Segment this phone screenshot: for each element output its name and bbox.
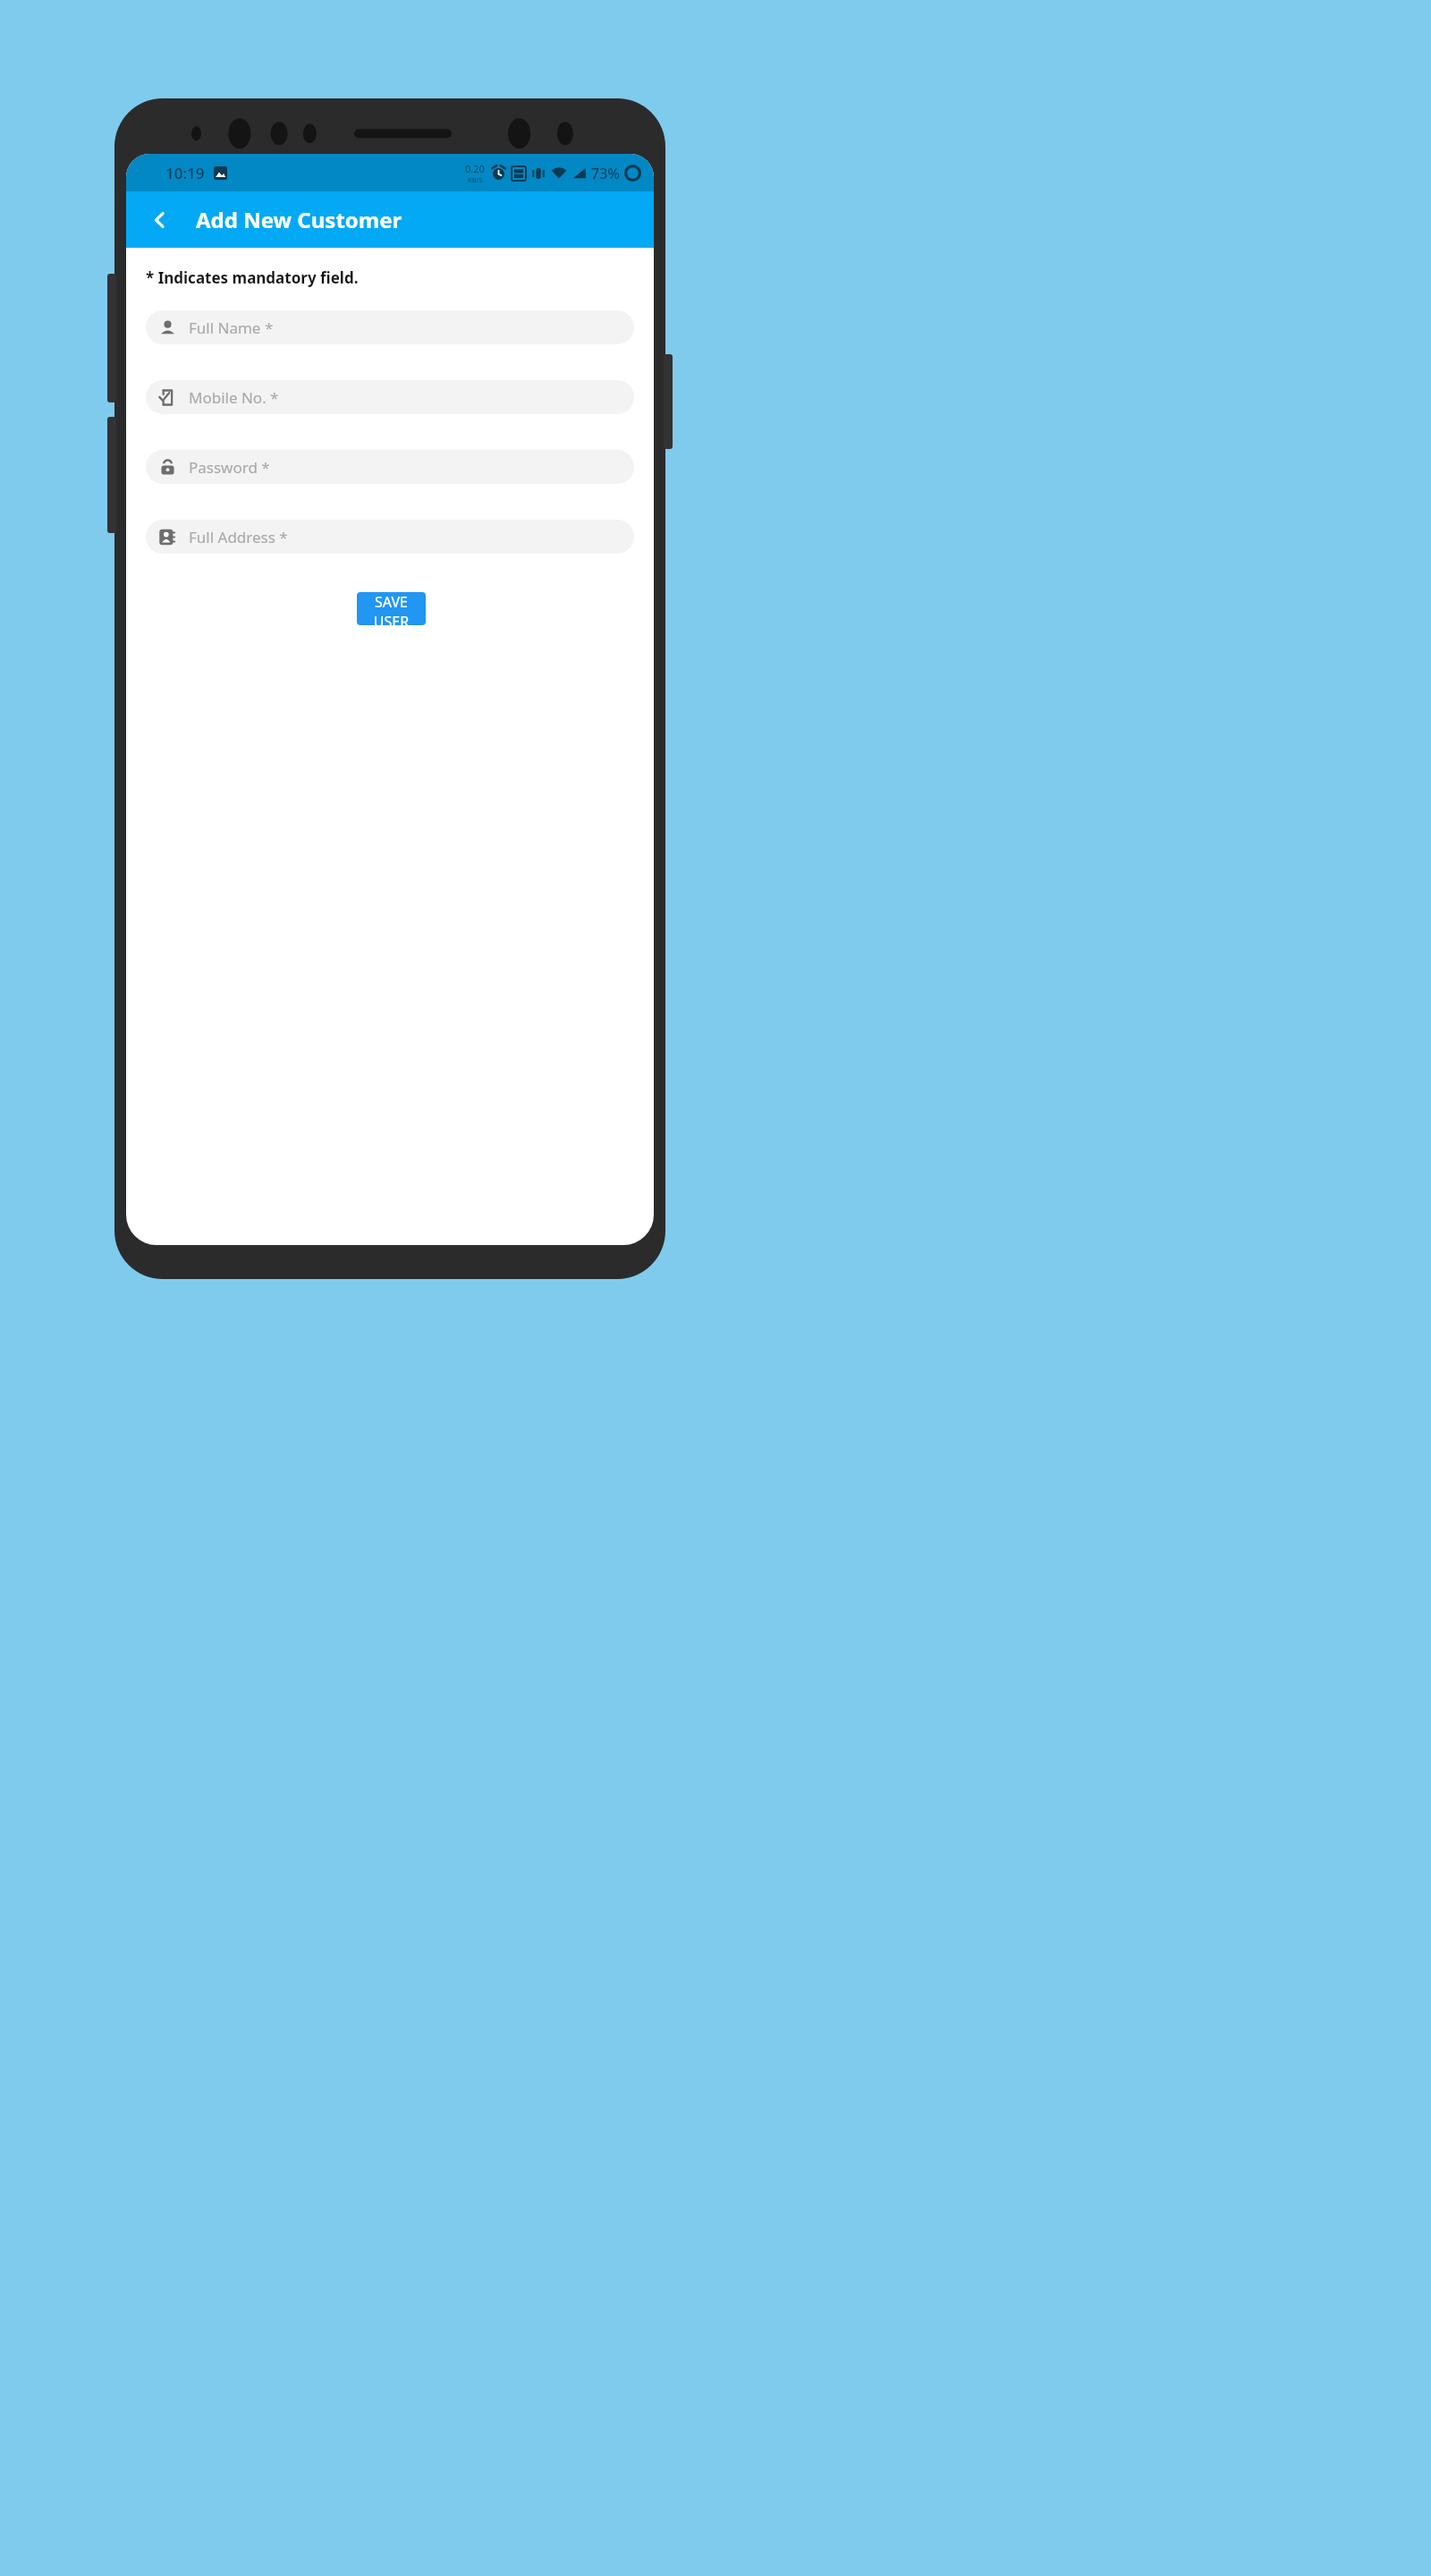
staticText: KB/S	[468, 175, 483, 184]
button[interactable]: Full Address *	[146, 520, 634, 554]
button[interactable]: Full Name *	[146, 310, 634, 344]
button[interactable]: Mobile No. *	[146, 380, 634, 414]
staticText: Full Address *	[189, 527, 288, 547]
staticText: Add New Customer	[196, 205, 402, 234]
staticText: 0.20	[465, 162, 485, 175]
staticText: 73%	[591, 164, 620, 183]
button[interactable]: SAVE USER	[357, 592, 426, 625]
staticText: 10:19	[165, 163, 205, 183]
staticText: Password *	[189, 457, 270, 478]
staticText: * Indicates mandatory field.	[146, 267, 359, 288]
button[interactable]: Back	[140, 200, 180, 240]
staticText: Mobile No. *	[189, 387, 279, 408]
button[interactable]: Password *	[146, 450, 634, 484]
staticText: Full Name *	[189, 318, 274, 338]
staticText: SAVE USER	[357, 592, 426, 625]
